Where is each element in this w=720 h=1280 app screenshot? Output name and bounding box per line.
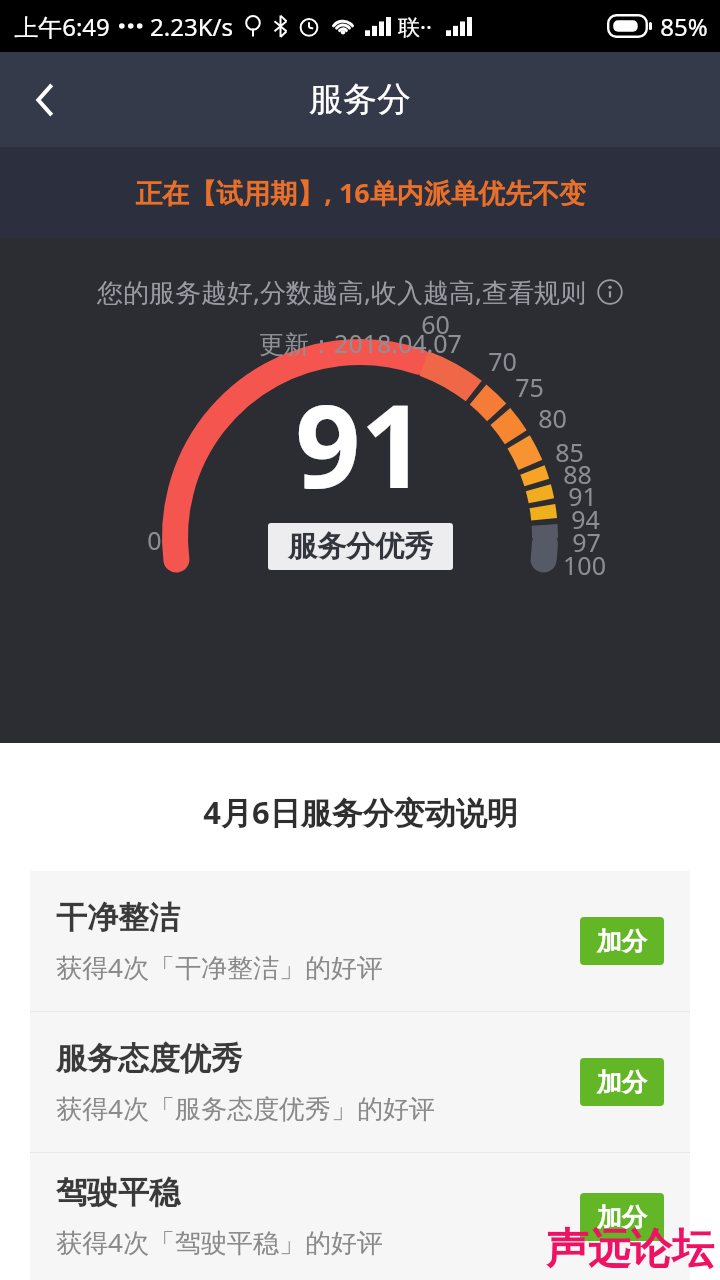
staticText: 服务分	[309, 78, 411, 121]
button[interactable]: 干净整洁	[30, 871, 690, 1011]
staticText: 加分	[597, 1202, 647, 1233]
staticText: 100	[563, 548, 606, 582]
staticText: 加分	[597, 1067, 647, 1098]
staticText: 4月6日服务分变动说明	[203, 791, 518, 833]
staticText: 75	[515, 370, 544, 404]
button[interactable]: 加分	[580, 917, 664, 965]
button[interactable]: 驾驶平稳	[30, 1153, 690, 1280]
staticText: 70	[488, 344, 517, 378]
button[interactable]: 加分	[580, 1058, 664, 1106]
staticText: 加分	[597, 926, 647, 957]
staticText: 获得4次「干净整洁」的好评	[56, 949, 383, 985]
staticText: 干净整洁	[56, 898, 180, 937]
staticText: 85	[555, 435, 584, 469]
staticText: 上午6:49	[14, 10, 110, 43]
staticText: 获得4次「驾驶平稳」的好评	[56, 1224, 383, 1260]
staticText: 您的服务越好,分数越高,收入越高,查看规则	[97, 274, 586, 310]
staticText: 94	[571, 502, 600, 536]
staticText: 91	[568, 479, 597, 513]
button[interactable]: Back	[12, 67, 78, 133]
staticText: 60	[421, 307, 450, 341]
staticText: 0	[147, 523, 162, 557]
staticText: 服务态度优秀	[56, 1039, 242, 1078]
staticText: 联··	[398, 11, 432, 41]
button[interactable]: 服务态度优秀	[30, 1012, 690, 1152]
button[interactable]: 服务分优秀	[268, 523, 453, 570]
staticText: 85%	[660, 10, 708, 43]
button[interactable]: 您的服务越好,分数越高,收入越高,查看规则	[97, 274, 623, 310]
staticText: 88	[563, 457, 592, 491]
staticText: 91	[295, 366, 426, 521]
staticText: 正在【试用期】, 16单内派单优先不变	[135, 174, 586, 211]
staticText: 驾驶平稳	[56, 1173, 180, 1212]
staticText: 2.23K/s	[150, 10, 233, 43]
staticText: 更新：2018.04.07	[259, 326, 462, 360]
other: View rules	[597, 279, 623, 305]
staticText: 服务分优秀	[288, 528, 433, 565]
staticText: 97	[572, 525, 601, 559]
button[interactable]: 加分	[580, 1193, 664, 1241]
staticText: 80	[538, 401, 567, 435]
staticText: 声远论坛	[546, 1223, 714, 1276]
staticText: 获得4次「服务态度优秀」的好评	[56, 1090, 435, 1126]
